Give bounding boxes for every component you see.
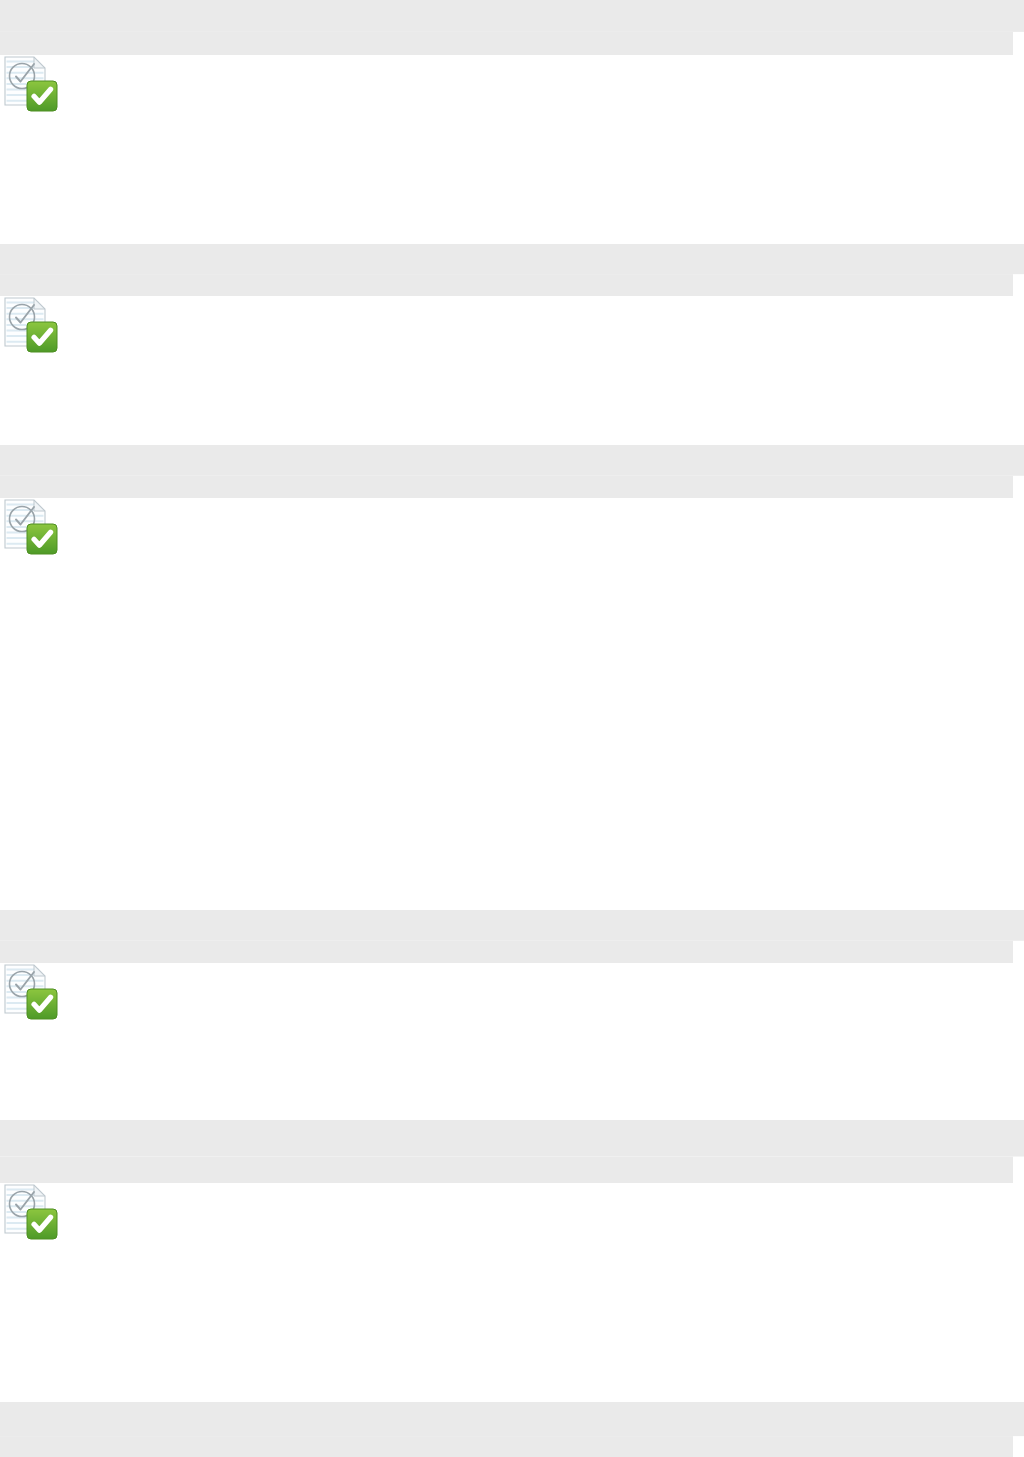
button[interactable]: Validated document	[0, 498, 1024, 910]
button[interactable]: Validated document	[0, 296, 1024, 445]
button[interactable]: Validated document	[0, 963, 1024, 1120]
button[interactable]: Validated document	[0, 1183, 1024, 1402]
other: Validated document	[5, 498, 61, 554]
other: Validated document	[5, 296, 61, 352]
other: Validated document	[5, 1183, 61, 1239]
button[interactable]: Validated document	[0, 55, 1024, 244]
other: Validated document	[5, 55, 61, 111]
other: Validated document	[5, 963, 61, 1019]
